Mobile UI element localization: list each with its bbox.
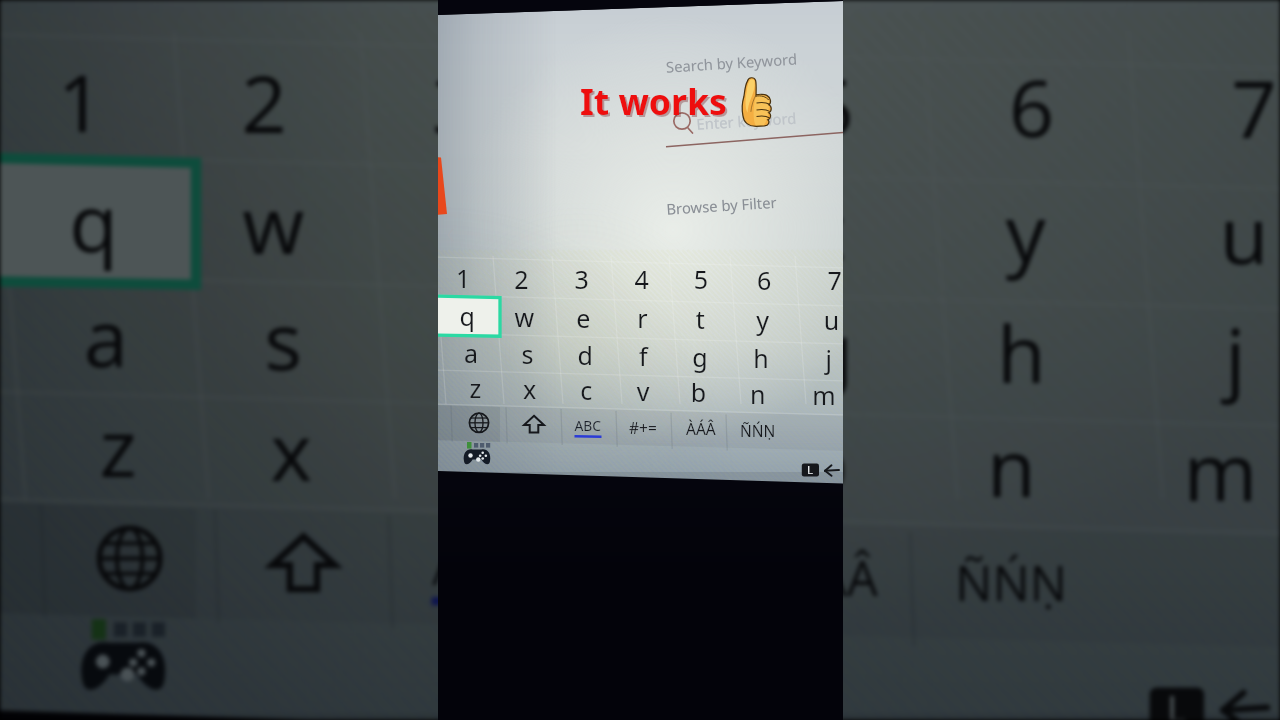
button[interactable]: Play or pause video [0,0,1280,720]
